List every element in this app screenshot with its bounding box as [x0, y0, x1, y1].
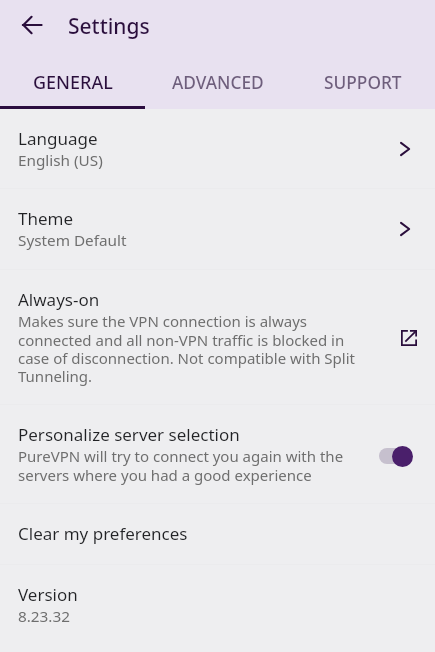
staticText: System Default	[18, 230, 127, 251]
button[interactable]: Always-on	[0, 270, 435, 404]
button[interactable]: Theme	[0, 189, 435, 269]
button[interactable]: Open always-on VPN settings	[401, 330, 417, 346]
button[interactable]: GENERAL	[0, 61, 145, 109]
staticText: PureVPN will try to connect you again wi…	[18, 446, 348, 485]
button[interactable]: Back	[8, 1, 55, 48]
button[interactable]: Language	[0, 109, 435, 188]
button[interactable]: Clear my preferences	[0, 504, 435, 564]
button[interactable]: SUPPORT	[290, 61, 435, 109]
button[interactable]: ADVANCED	[145, 61, 290, 109]
staticText: GENERAL	[33, 70, 113, 95]
staticText: English (US)	[18, 150, 103, 171]
staticText: SUPPORT	[324, 71, 402, 95]
staticText: Personalize server selection	[18, 423, 240, 446]
staticText: Settings	[68, 12, 150, 41]
staticText: Version	[18, 583, 78, 606]
staticText: Always-on	[18, 288, 100, 311]
staticText: Theme	[18, 207, 74, 230]
staticText: Clear my preferences	[18, 522, 188, 545]
staticText: Language	[18, 127, 98, 150]
staticText: Makes sure the VPN connection is always …	[18, 311, 355, 386]
button[interactable]: Version	[0, 565, 435, 651]
staticText: ADVANCED	[172, 71, 264, 95]
button[interactable]: Personalize server selection	[379, 440, 414, 472]
staticText: 8.23.32	[18, 606, 70, 627]
